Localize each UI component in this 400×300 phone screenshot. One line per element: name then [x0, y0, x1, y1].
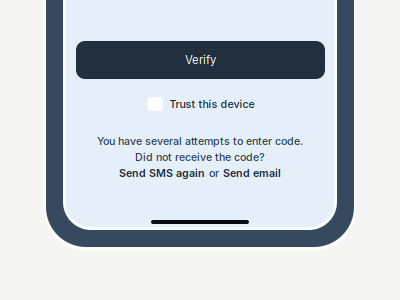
- staticText: Did not receive the code?: [135, 150, 265, 163]
- button[interactable]: Send SMS again: [119, 166, 205, 179]
- staticText: Send email: [223, 166, 281, 179]
- staticText: Verify: [185, 53, 216, 67]
- staticText: You have several attempts to enter code.: [97, 134, 303, 147]
- staticText: Send SMS again: [119, 166, 205, 179]
- button[interactable]: Send email: [223, 166, 281, 179]
- staticText: Trust this device: [169, 97, 254, 110]
- button[interactable]: Verify: [76, 41, 325, 79]
- staticText: or: [209, 166, 219, 179]
- button[interactable]: Trust this device: [64, 96, 338, 112]
